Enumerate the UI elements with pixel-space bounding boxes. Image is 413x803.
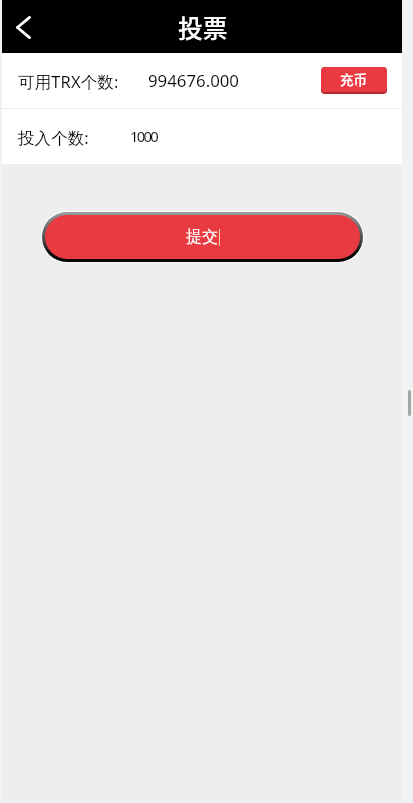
button[interactable]: 可用TRX个数: xyxy=(2,53,402,108)
staticText: 提交 xyxy=(186,227,218,247)
staticText: 1000 xyxy=(130,126,158,146)
button[interactable]: Back xyxy=(2,0,48,53)
button[interactable]: 投入个数: xyxy=(2,109,402,164)
staticText: 994676.000 xyxy=(148,69,239,92)
button[interactable]: 充币 xyxy=(321,67,387,94)
staticText: 充币 xyxy=(340,69,368,89)
staticText: 投票 xyxy=(178,9,228,45)
button[interactable]: 提交 xyxy=(45,215,360,259)
staticText: 可用TRX个数: xyxy=(18,70,119,92)
staticText: 投入个数: xyxy=(18,126,89,148)
